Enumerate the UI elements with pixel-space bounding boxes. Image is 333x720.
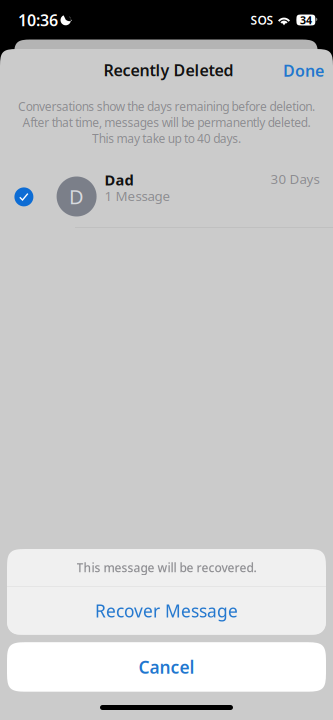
staticText: This message will be recovered. bbox=[76, 559, 256, 575]
staticText: Dad bbox=[104, 170, 133, 189]
staticText: Conversations show the days remaining be… bbox=[18, 98, 315, 114]
button[interactable]: Recover Message bbox=[7, 587, 326, 635]
staticText: 30 Days bbox=[270, 170, 319, 188]
button[interactable]: Done bbox=[271, 53, 333, 88]
staticText: D bbox=[69, 183, 84, 210]
staticText: Recently Deleted bbox=[103, 59, 233, 81]
staticText: Cancel bbox=[138, 655, 194, 678]
staticText: 1 Message bbox=[104, 187, 170, 205]
staticText: After that time, messages will be perman… bbox=[22, 114, 310, 130]
staticText: Recover Message bbox=[95, 599, 238, 622]
staticText: 34 bbox=[300, 13, 312, 27]
button[interactable]: D bbox=[0, 169, 333, 227]
staticText: This may take up to 40 days. bbox=[92, 130, 241, 146]
staticText: SOS bbox=[250, 12, 273, 28]
staticText: 10:36 bbox=[18, 9, 58, 31]
staticText: Done bbox=[283, 60, 324, 81]
button[interactable]: Cancel bbox=[7, 642, 326, 692]
